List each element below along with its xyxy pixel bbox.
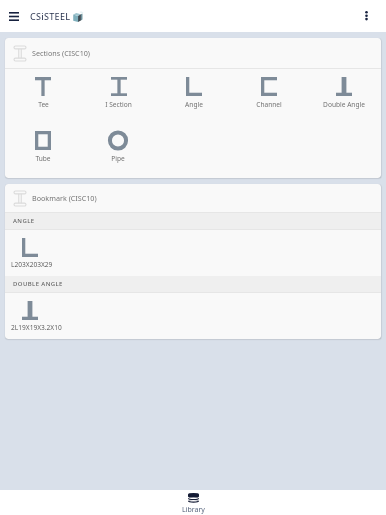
staticText: Library: [182, 505, 205, 515]
staticText: L203X203X29: [11, 260, 53, 269]
button[interactable]: Angle: [156, 77, 231, 109]
button[interactable]: Library: [0, 490, 386, 515]
staticText: DOUBLE ANGLE: [13, 280, 63, 288]
button[interactable]: Open navigation menu: [2, 0, 26, 32]
staticText: Channel: [256, 100, 282, 109]
button[interactable]: Pipe: [80, 131, 155, 163]
button[interactable]: More options: [355, 0, 377, 32]
staticText: Sections (CISC10): [32, 48, 91, 58]
staticText: Tube: [35, 154, 51, 163]
button[interactable]: Double Angle: [306, 77, 381, 109]
staticText: Tee: [38, 100, 49, 109]
button[interactable]: Tube: [5, 131, 80, 163]
staticText: Pipe: [111, 154, 125, 163]
staticText: ANGLE: [13, 217, 35, 225]
staticText: Angle: [185, 100, 203, 109]
button[interactable]: I Section: [81, 77, 156, 109]
staticText: 2L19X19X3.2X10: [11, 323, 62, 332]
staticText: Bookmark (CISC10): [32, 193, 97, 203]
button[interactable]: Tee: [5, 77, 81, 109]
button[interactable]: L203X203X29: [5, 230, 381, 276]
button[interactable]: Channel: [231, 77, 306, 109]
staticText: Double Angle: [323, 100, 365, 109]
button[interactable]: 2L19X19X3.2X10: [5, 293, 381, 339]
staticText: I Section: [105, 100, 132, 109]
staticText: CSiSTEEL: [30, 10, 71, 22]
